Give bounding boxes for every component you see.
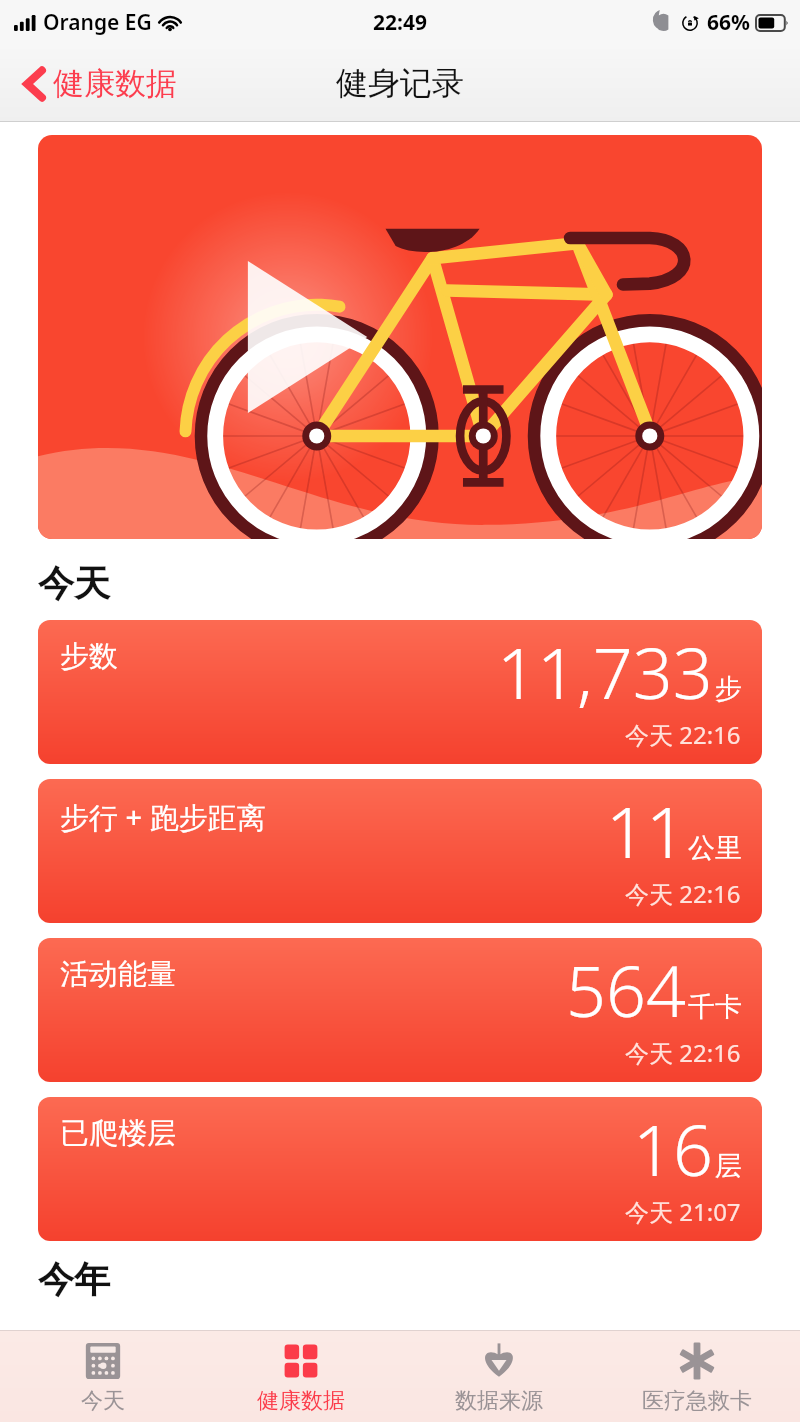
staticText: 步行 + 跑步距离 xyxy=(60,797,266,837)
staticText: 健身记录 xyxy=(336,63,464,103)
staticText: 步数 xyxy=(60,638,118,675)
staticText: 今天 22:16 xyxy=(625,1036,741,1069)
staticText: 今天 21:07 xyxy=(625,1195,741,1228)
staticText: 66% xyxy=(707,8,750,37)
staticText: 医疗急救卡 xyxy=(642,1387,752,1415)
staticText: 层 xyxy=(715,1149,742,1183)
staticText: Orange EG xyxy=(43,8,152,37)
staticText: 16 xyxy=(633,1101,713,1196)
staticText: 11,733 xyxy=(497,624,713,719)
button[interactable]: 步数 xyxy=(38,620,762,764)
staticText: 步 xyxy=(715,672,742,706)
button[interactable]: 步行 + 跑步距离 xyxy=(38,779,762,923)
staticText: 数据来源 xyxy=(455,1387,543,1415)
staticText: 564 xyxy=(566,942,686,1037)
staticText: 已爬楼层 xyxy=(60,1115,176,1152)
button[interactable]: 医疗急救卡 xyxy=(602,1333,792,1421)
staticText: 今天 22:16 xyxy=(625,718,741,751)
staticText: 今天 xyxy=(81,1387,125,1415)
button[interactable]: 健康数据 xyxy=(206,1333,396,1421)
staticText: 今天 22:16 xyxy=(625,877,741,910)
staticText: 11 xyxy=(606,783,686,878)
staticText: 22:49 xyxy=(373,8,427,37)
staticText: 健康数据 xyxy=(257,1387,345,1415)
button[interactable]: 数据来源 xyxy=(404,1333,594,1421)
button[interactable]: 已爬楼层 xyxy=(38,1097,762,1241)
button[interactable]: 健康数据 xyxy=(18,58,183,109)
button[interactable]: 播放健身视频 xyxy=(38,135,762,539)
staticText: 活动能量 xyxy=(60,956,176,993)
staticText: 健康数据 xyxy=(53,64,177,103)
button[interactable]: 活动能量 xyxy=(38,938,762,1082)
button[interactable]: 今天 xyxy=(8,1333,198,1421)
staticText: 公里 xyxy=(688,831,742,865)
staticText: 今天 xyxy=(38,561,110,606)
staticText: 今年 xyxy=(38,1257,110,1302)
staticText: 千卡 xyxy=(688,990,742,1024)
